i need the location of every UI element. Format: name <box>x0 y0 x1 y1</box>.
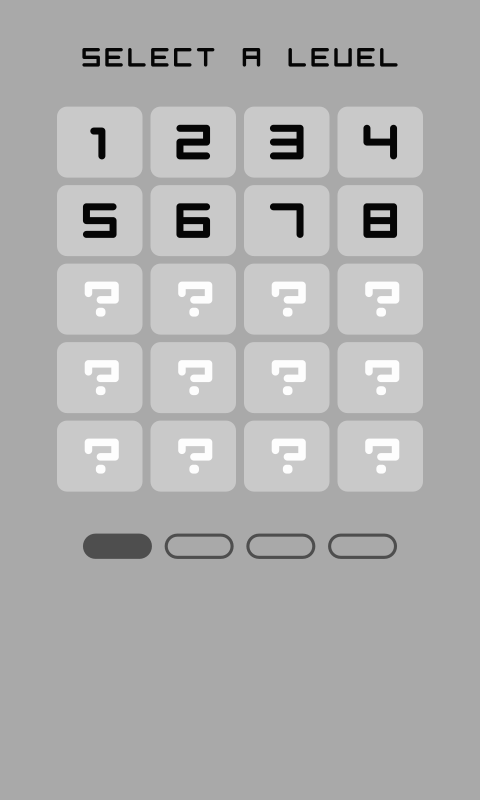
button[interactable] <box>244 342 329 413</box>
button[interactable] <box>337 421 423 492</box>
button[interactable]: Page 1, current page <box>83 534 152 559</box>
button[interactable]: Go to page 4 <box>328 534 397 559</box>
button[interactable]: Go to page 3 <box>246 534 315 559</box>
button[interactable] <box>337 107 423 178</box>
button[interactable] <box>150 342 236 413</box>
button[interactable] <box>244 264 329 335</box>
button[interactable] <box>337 185 423 256</box>
button[interactable] <box>57 185 142 256</box>
button[interactable] <box>150 185 236 256</box>
button[interactable] <box>57 342 142 413</box>
button[interactable] <box>244 421 329 492</box>
button[interactable] <box>150 421 236 492</box>
button[interactable] <box>150 107 236 178</box>
button[interactable] <box>57 107 142 178</box>
button[interactable] <box>244 107 329 178</box>
button[interactable] <box>337 264 423 335</box>
button[interactable] <box>337 342 423 413</box>
button[interactable] <box>150 264 236 335</box>
button[interactable] <box>57 421 142 492</box>
button[interactable] <box>57 264 142 335</box>
button[interactable]: Go to page 2 <box>165 534 234 559</box>
button[interactable] <box>244 185 329 256</box>
